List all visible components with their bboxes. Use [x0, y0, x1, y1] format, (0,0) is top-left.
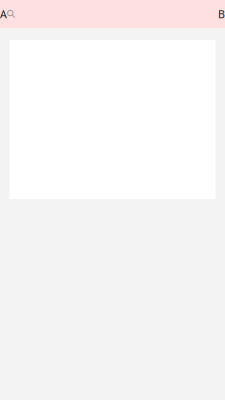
staticText: B	[218, 7, 225, 21]
staticText: A	[0, 7, 7, 21]
